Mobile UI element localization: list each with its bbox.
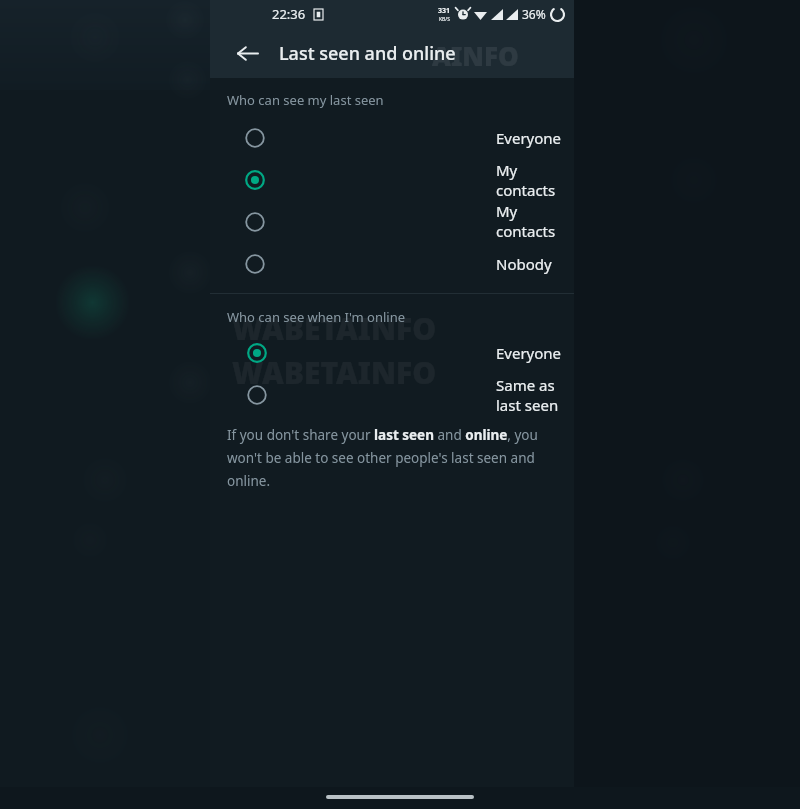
staticText: My contacts except... [496, 201, 574, 243]
staticText: Who can see when I'm online [227, 308, 406, 326]
staticText: Nobody [496, 254, 552, 274]
staticText: WABETAINFO [232, 352, 437, 393]
staticText: 22:36 [272, 5, 306, 23]
staticText: AINFO [432, 38, 519, 73]
staticText: Last seen and online [279, 41, 456, 66]
button[interactable]: Everyone [210, 117, 574, 159]
button[interactable]: Back [224, 30, 270, 76]
staticText: WABETAINFO [232, 308, 437, 349]
staticText: My contacts [496, 160, 574, 200]
button[interactable]: My contacts except... [210, 201, 574, 243]
staticText: 36% [522, 6, 546, 22]
button[interactable]: Nobody [210, 243, 574, 285]
staticText: Everyone [496, 128, 562, 148]
staticText: If you don't share your last seen and on… [227, 426, 554, 490]
staticText: Everyone [496, 343, 562, 363]
staticText: 331 [438, 6, 451, 16]
button[interactable]: Everyone [210, 332, 574, 374]
staticText: KB/S [439, 16, 450, 23]
button[interactable]: My contacts [210, 159, 574, 201]
staticText: Who can see my last seen [227, 91, 384, 109]
button[interactable]: Same as last seen [210, 374, 574, 416]
staticText: Same as last seen [496, 375, 574, 415]
